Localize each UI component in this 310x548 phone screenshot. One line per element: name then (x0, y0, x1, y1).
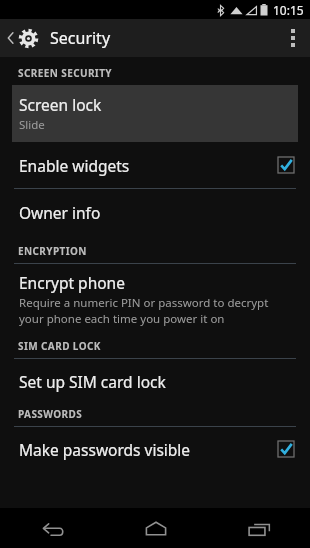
button[interactable]: Back (4, 27, 115, 49)
staticText: Enable widgets (19, 155, 278, 176)
staticText: Security (50, 27, 111, 49)
staticText: Slide (19, 117, 45, 133)
button[interactable]: Owner info (0, 189, 310, 235)
button[interactable]: Encrypt phone (0, 264, 310, 335)
staticText: Owner info (19, 202, 101, 223)
staticText: ENCRYPTION (18, 244, 87, 258)
staticText: SIM CARD LOCK (18, 339, 101, 353)
staticText: PASSWORDS (18, 407, 83, 421)
button[interactable]: Home (104, 508, 207, 548)
staticText: Make passwords visible (19, 439, 278, 460)
staticText: Require a numeric PIN or password to dec… (19, 295, 269, 326)
staticText: Set up SIM card lock (19, 371, 166, 392)
button[interactable]: Make passwords visible (0, 427, 310, 471)
staticText: Screen lock (19, 94, 102, 115)
button[interactable]: Back (0, 508, 104, 548)
button[interactable]: Screen lock (12, 85, 298, 142)
button[interactable]: More options (276, 19, 310, 57)
button[interactable]: Recent apps (207, 508, 310, 548)
staticText: Encrypt phone (19, 272, 125, 293)
button[interactable]: Enable widgets (0, 142, 310, 188)
button[interactable]: Set up SIM card lock (0, 359, 310, 403)
staticText: SCREEN SECURITY (18, 66, 112, 80)
staticText: 10:15 (273, 2, 304, 18)
